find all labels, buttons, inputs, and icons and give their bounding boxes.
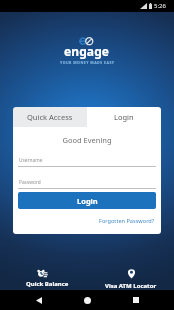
staticText: engage: [64, 43, 110, 59]
button[interactable]: Forgotten Password?: [99, 217, 155, 225]
other: Quick Balance: [37, 269, 49, 277]
staticText: Password: [19, 179, 41, 186]
other: Visa ATM Locator: [127, 269, 136, 279]
staticText: Login: [77, 196, 98, 206]
button[interactable]: Back: [29, 290, 49, 310]
staticText: Visa ATM Locator: [105, 282, 157, 290]
button[interactable]: Login: [18, 192, 156, 209]
staticText: Username: [19, 157, 43, 164]
button[interactable]: Home: [77, 290, 97, 310]
staticText: Quick Balance: [26, 280, 69, 288]
staticText: 5:26: [154, 2, 166, 10]
staticText: Good Evening: [13, 135, 161, 145]
staticText: Login: [114, 112, 134, 122]
button[interactable]: Visa ATM Locator: [89, 269, 173, 290]
button[interactable]: Recent apps: [126, 290, 146, 310]
staticText: YOUR MONEY MADE EASY: [60, 60, 115, 65]
button[interactable]: Login: [87, 107, 161, 127]
button[interactable]: Quick Balance: [5, 269, 89, 288]
staticText: Quick Access: [27, 112, 73, 122]
button[interactable]: Quick Access: [13, 107, 87, 127]
